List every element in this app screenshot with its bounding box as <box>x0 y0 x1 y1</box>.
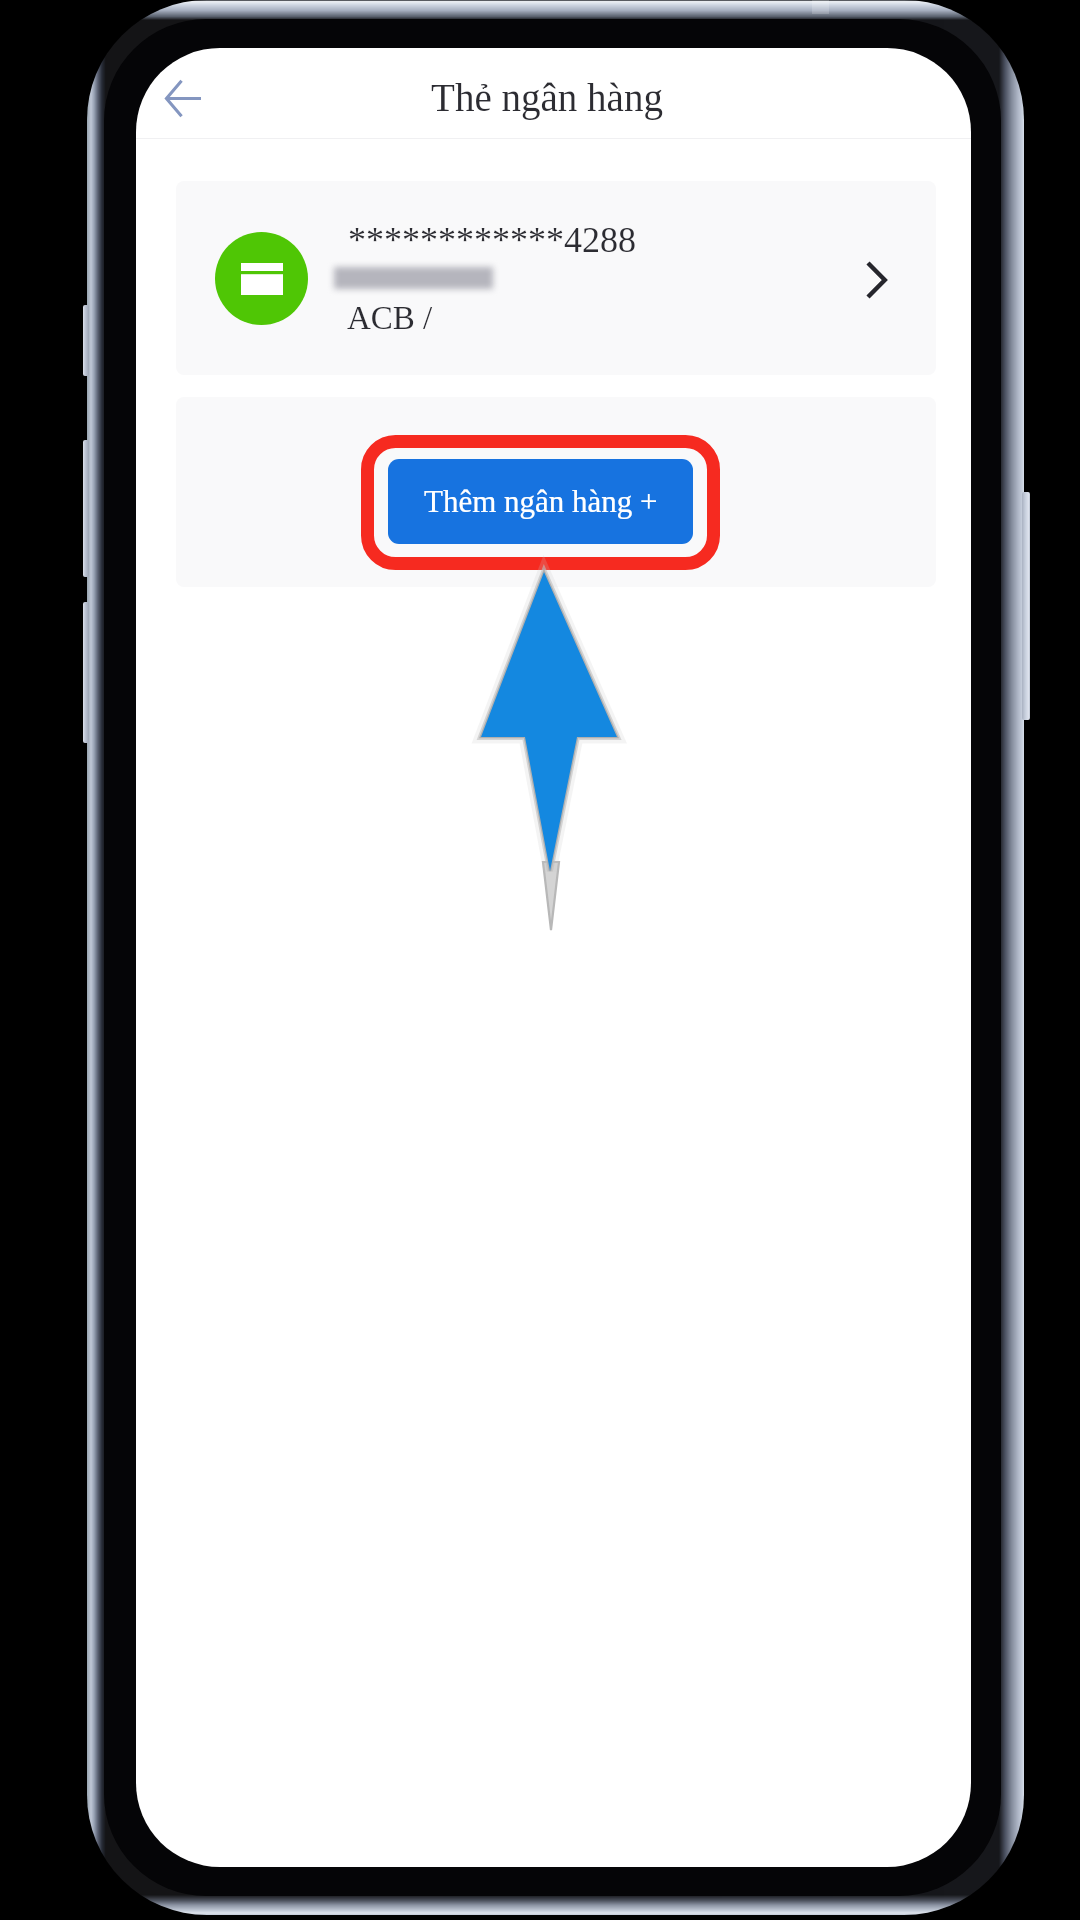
staticText: Thẻ ngân hàng <box>431 76 663 119</box>
button[interactable]: ************4288 <box>176 181 936 375</box>
staticText: ************4288 <box>348 220 636 260</box>
staticText: ACB / <box>347 300 433 337</box>
button[interactable]: Thêm ngân hàng + <box>388 459 693 544</box>
staticText: Thêm ngân hàng + <box>424 484 658 518</box>
button[interactable]: Open card details <box>848 252 904 308</box>
button[interactable]: Back <box>145 60 221 136</box>
